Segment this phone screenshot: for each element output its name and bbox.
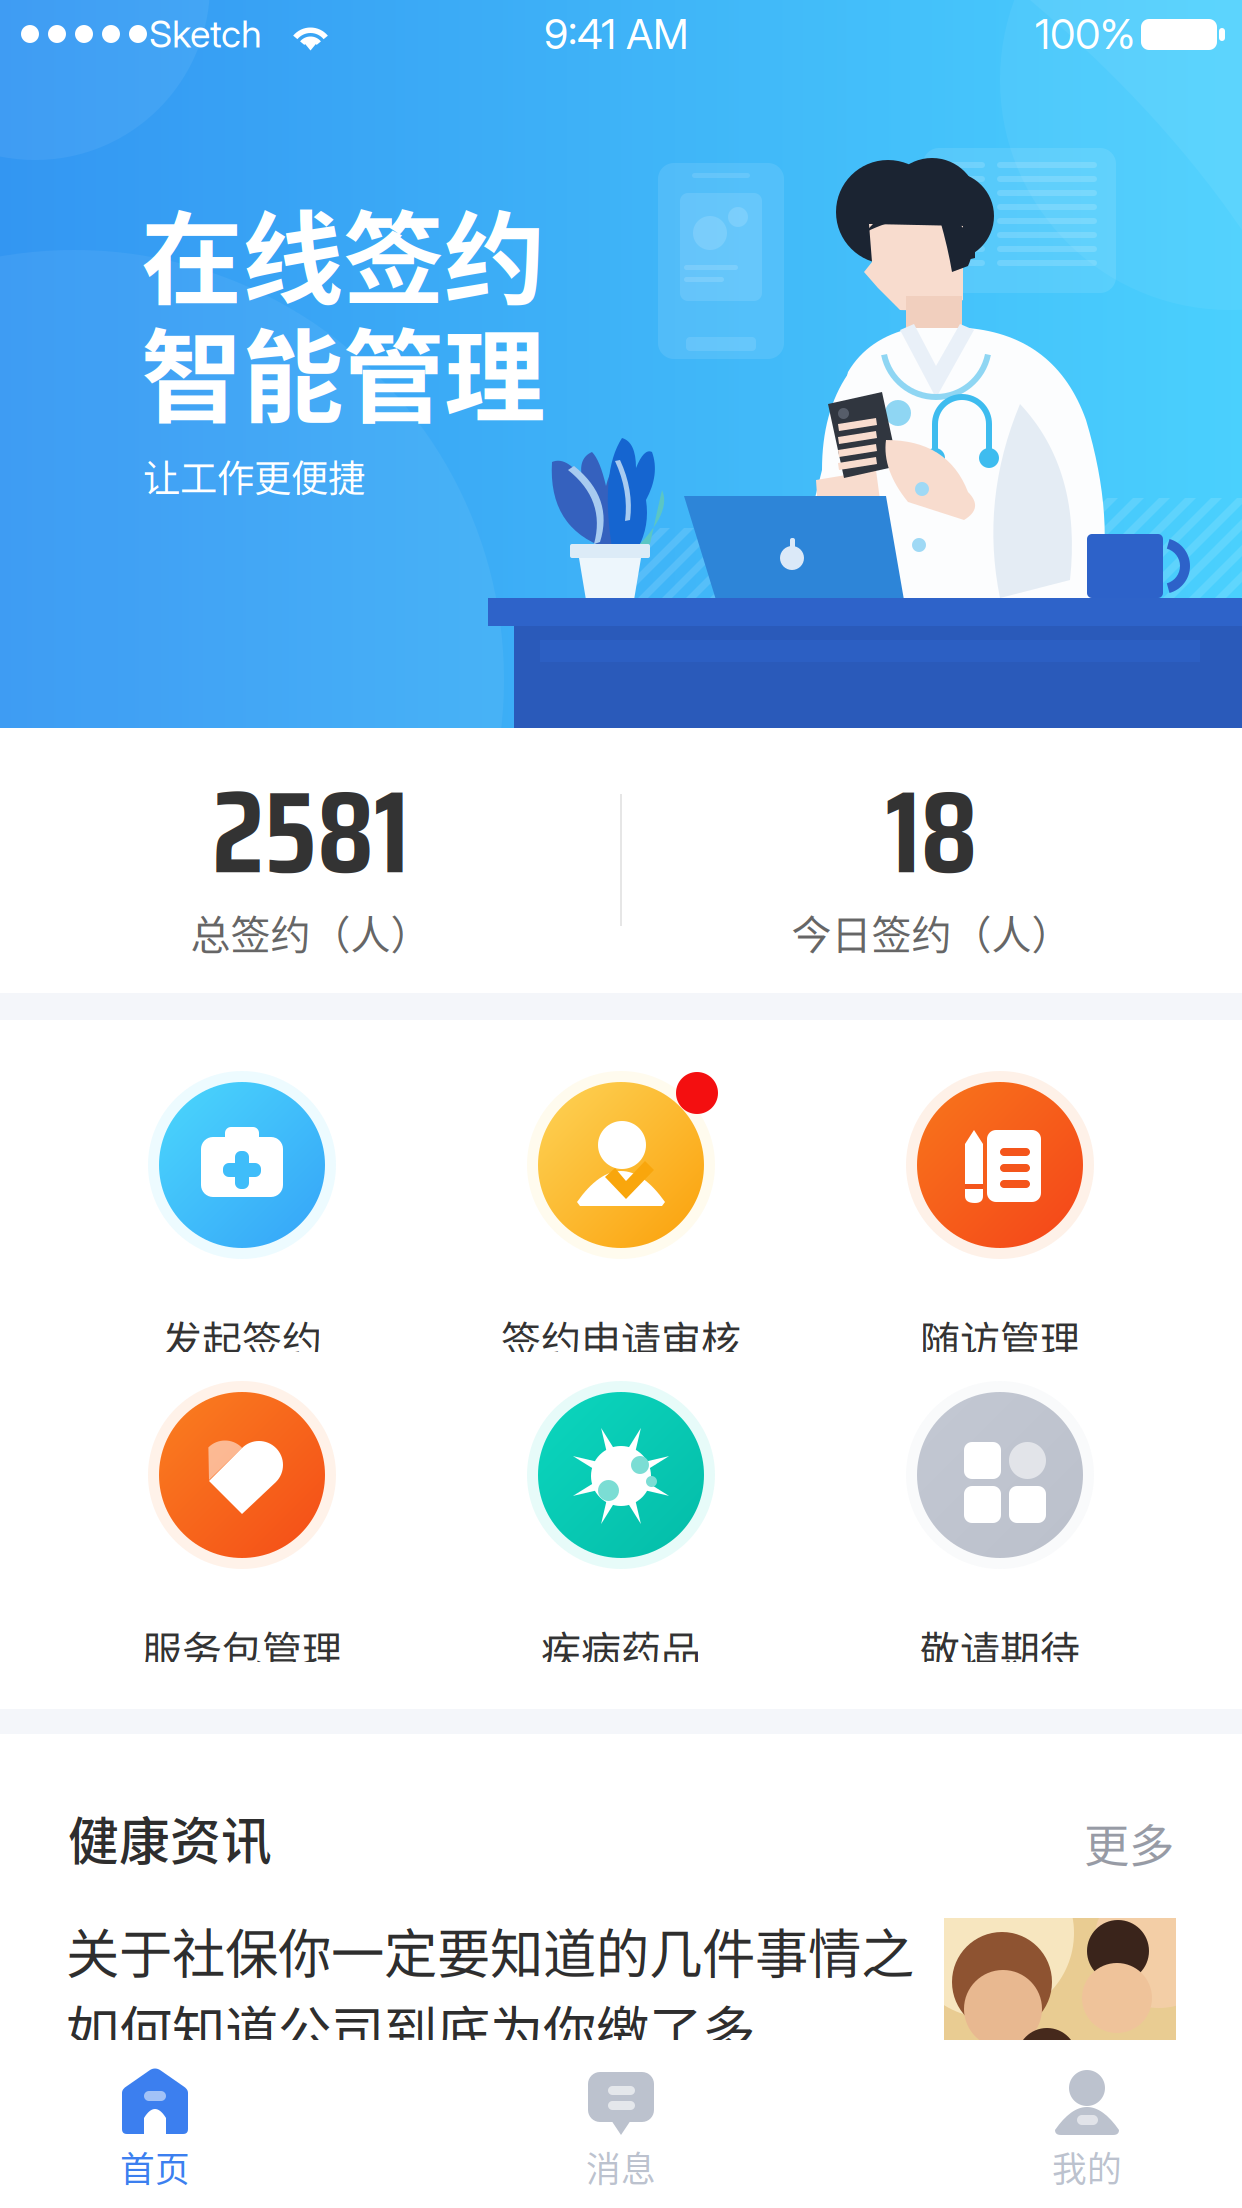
staticText: 随访管理 (920, 1309, 1080, 1367)
button[interactable]: 更多 (1008, 1814, 1174, 1872)
button[interactable]: 消息 (471, 2040, 771, 2208)
staticText: 18 (885, 741, 977, 923)
button[interactable]: 我的 (937, 2040, 1237, 2208)
staticText: 我的 (1052, 2142, 1122, 2192)
staticText: 2581 (212, 741, 409, 923)
staticText: 消息 (586, 2142, 656, 2192)
button[interactable]: 疾病药品 (431, 1362, 811, 1662)
staticText: 健康资讯 (68, 1801, 272, 1875)
button[interactable]: 关于社保你一定要知道的几件事情之如何知道公司到底为你缴了多 (0, 1912, 1242, 2040)
staticText: 在线签约 (141, 179, 545, 325)
staticText: 发起签约 (162, 1309, 322, 1367)
button[interactable]: 发起签约 (52, 1052, 432, 1352)
staticText: 今日签约（人） (791, 903, 1071, 961)
button[interactable]: 服务包管理 (52, 1362, 432, 1662)
staticText: 首页 (120, 2142, 190, 2192)
staticText: 敬请期待 (920, 1619, 1080, 1677)
staticText: 让工作更便捷 (143, 449, 365, 503)
staticText: Sketch (149, 11, 262, 57)
button[interactable]: 随访管理 (810, 1052, 1190, 1352)
staticText: 服务包管理 (142, 1619, 342, 1677)
button[interactable]: 首页 (5, 2040, 305, 2208)
button[interactable]: 签约申请审核 (431, 1052, 811, 1352)
staticText: 关于社保你一定要知道的几件事情之如何知道公司到底为你缴了多 (66, 1912, 914, 2066)
staticText: 智能管理 (141, 297, 545, 443)
button[interactable]: 敬请期待 (810, 1362, 1190, 1662)
staticText: 更多 (1084, 1810, 1174, 1876)
staticText: 总签约（人） (190, 903, 430, 961)
staticText: 签约申请审核 (501, 1309, 741, 1367)
staticText: 疾病药品 (541, 1619, 701, 1677)
staticText: 9:41 AM (544, 9, 689, 59)
staticText: 100% (1035, 9, 1135, 59)
